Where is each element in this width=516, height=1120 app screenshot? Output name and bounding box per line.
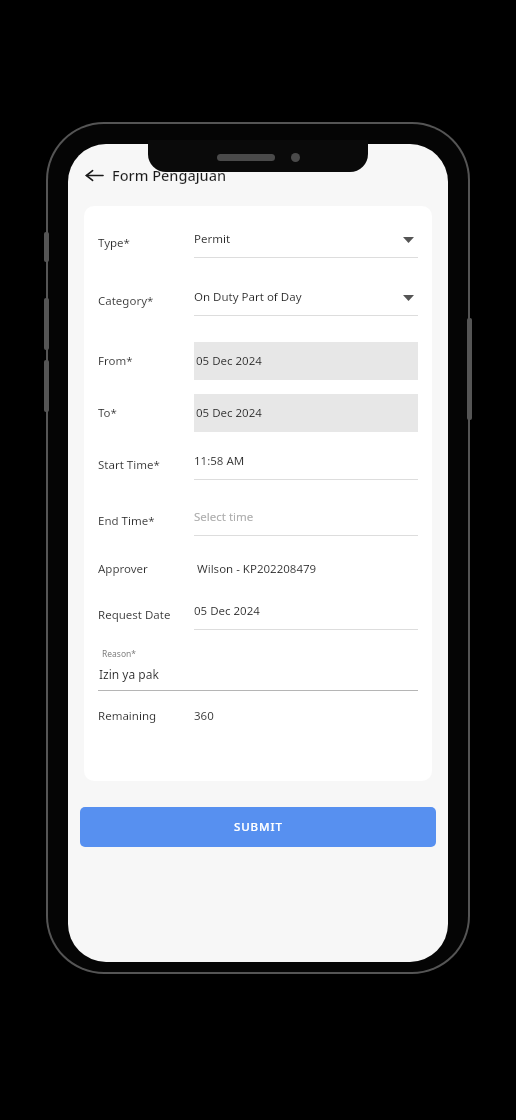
button[interactable]: From* — [98, 342, 418, 380]
staticText: 05 Dec 2024 — [196, 353, 262, 369]
button[interactable]: SUBMIT — [80, 807, 436, 847]
staticText: 11:58 AM — [194, 453, 418, 469]
staticText: Type* — [98, 235, 194, 251]
staticText: Approver — [98, 561, 194, 577]
button[interactable]: Type* — [98, 228, 418, 258]
button[interactable]: Remaining — [98, 705, 418, 727]
staticText: Wilson - KP202208479 — [194, 561, 418, 577]
staticText: Form Pengajuan — [112, 165, 227, 185]
staticText: Permit — [194, 231, 403, 247]
button[interactable]: Approver — [98, 558, 418, 580]
button[interactable]: Category* — [98, 286, 418, 316]
staticText: Category* — [98, 293, 194, 309]
button[interactable]: Reason* — [98, 648, 418, 691]
button[interactable]: To* — [98, 394, 418, 432]
staticText: Remaining — [98, 708, 194, 724]
button[interactable]: Start Time* — [98, 450, 418, 480]
staticText: SUBMIT — [234, 819, 283, 835]
staticText: To* — [98, 405, 194, 421]
staticText: From* — [98, 353, 194, 369]
staticText: Request Date — [98, 607, 194, 623]
button[interactable]: Request Date — [98, 600, 418, 630]
staticText: On Duty Part of Day — [194, 289, 403, 305]
button[interactable]: End Time* — [98, 506, 418, 536]
staticText: Izin ya pak — [99, 666, 159, 682]
staticText: Select time — [194, 509, 418, 525]
staticText: 360 — [194, 708, 418, 724]
staticText: 05 Dec 2024 — [196, 405, 262, 421]
staticText: Start Time* — [98, 457, 194, 473]
staticText: End Time* — [98, 513, 194, 529]
button[interactable]: Back — [74, 155, 114, 195]
staticText: Reason* — [102, 648, 137, 660]
staticText: 05 Dec 2024 — [194, 603, 418, 619]
